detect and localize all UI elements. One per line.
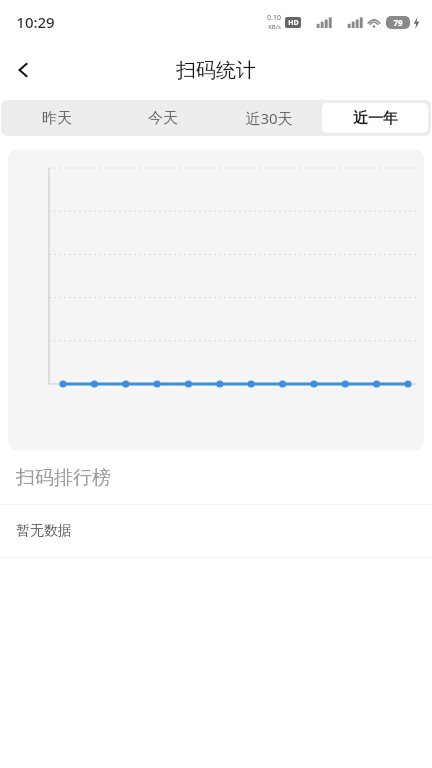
staticText: 近一年 [353,109,398,128]
button[interactable]: 近一年 [322,103,428,133]
staticText: 0.10 [267,13,281,23]
staticText: HD [288,18,299,28]
staticText: 昨天 [42,109,72,128]
staticText: 扫码排行榜 [16,466,111,490]
staticText: 10:29 [16,12,55,32]
staticText: 暂无数据 [16,522,72,540]
staticText: 近30天 [245,108,293,128]
staticText: KB/s [268,23,281,31]
button[interactable]: 今天 [110,103,216,133]
staticText: 79 [393,17,403,28]
button[interactable]: Back [0,46,48,94]
button[interactable]: 昨天 [4,103,110,133]
staticText: 今天 [148,109,178,128]
staticText: 扫码统计 [176,58,256,83]
button[interactable]: 近30天 [216,103,322,133]
